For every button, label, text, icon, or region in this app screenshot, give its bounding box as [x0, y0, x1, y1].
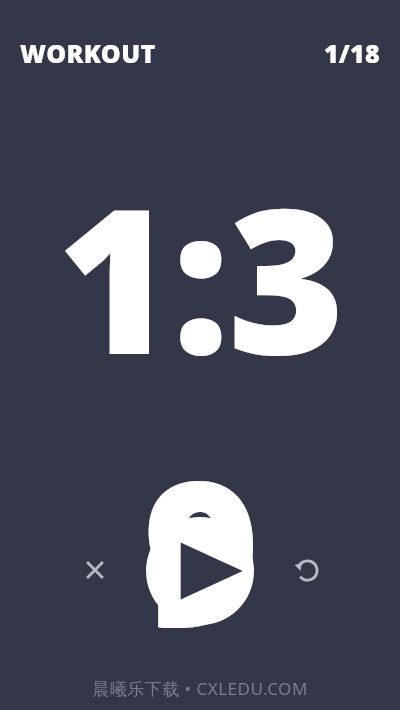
- button[interactable]: Restart timer: [283, 546, 331, 594]
- button[interactable]: 1/18: [324, 36, 380, 70]
- button[interactable]: Start timer: [146, 517, 254, 625]
- staticText: 1:39: [0, 140, 400, 684]
- button[interactable]: Close workout: [71, 546, 119, 594]
- staticText: 1/18: [324, 36, 380, 70]
- button[interactable]: WORKOUT: [20, 36, 156, 70]
- staticText: WORKOUT: [20, 36, 156, 70]
- staticText: 晨曦乐下载 • CXLEDU.COM: [92, 677, 308, 700]
